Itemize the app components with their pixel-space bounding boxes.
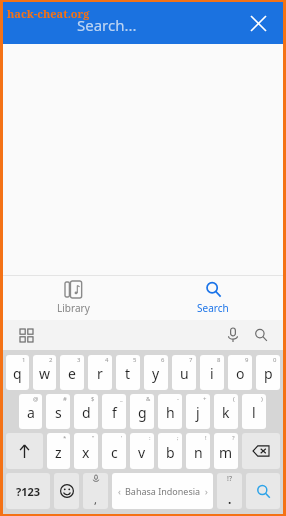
staticText: t: [125, 364, 131, 383]
button[interactable]: Library: [3, 276, 143, 320]
button[interactable]: ): [242, 394, 266, 429]
staticText: v: [138, 443, 146, 462]
staticText: 5: [133, 356, 137, 364]
staticText: b: [166, 443, 175, 462]
button[interactable]: -: [158, 394, 182, 429]
button[interactable]: (: [214, 394, 238, 429]
staticText: Library: [57, 301, 90, 315]
staticText: ‹: [118, 485, 121, 497]
staticText: ;: [177, 434, 179, 442]
staticText: ": [92, 434, 95, 442]
staticText: 8: [217, 356, 221, 364]
staticText: :: [149, 434, 151, 442]
button[interactable]: Comma: [83, 473, 108, 509]
staticText: g: [138, 403, 147, 422]
staticText: ?: [232, 434, 235, 442]
staticText: o: [236, 364, 245, 383]
staticText: #: [63, 395, 67, 403]
staticText: 2: [49, 356, 53, 364]
staticText: +: [203, 395, 207, 403]
staticText: &: [146, 395, 151, 403]
staticText: 9: [245, 356, 249, 364]
button[interactable]: _: [102, 394, 126, 429]
staticText: x: [82, 443, 90, 462]
button[interactable]: $: [74, 394, 98, 429]
button[interactable]: 2: [33, 355, 56, 390]
button[interactable]: 9: [228, 355, 252, 390]
staticText: Bahasa Indonesia: [125, 485, 201, 497]
button[interactable]: +: [186, 394, 210, 429]
button[interactable]: Period: [217, 473, 242, 509]
button[interactable]: Clipboard: [13, 322, 39, 348]
button[interactable]: ": [74, 433, 98, 469]
staticText: 1: [22, 356, 26, 364]
button[interactable]: 3: [60, 355, 84, 390]
button[interactable]: 0: [256, 355, 280, 390]
staticText: n: [194, 443, 203, 462]
staticText: k: [222, 403, 230, 422]
button[interactable]: Search: [143, 276, 283, 320]
staticText: h: [166, 403, 175, 422]
button[interactable]: !: [186, 433, 210, 469]
button[interactable]: ?123: [6, 473, 50, 509]
button[interactable]: Close: [241, 6, 275, 40]
staticText: 3: [77, 356, 81, 364]
staticText: f: [112, 403, 117, 422]
button[interactable]: ': [102, 433, 126, 469]
staticText: hack-cheat.org: [7, 6, 90, 21]
button[interactable]: 7: [172, 355, 196, 390]
staticText: ›: [205, 485, 208, 497]
staticText: y: [152, 364, 160, 383]
staticText: e: [68, 364, 76, 383]
staticText: q: [13, 364, 22, 383]
button[interactable]: 6: [144, 355, 168, 390]
staticText: z: [55, 443, 62, 462]
staticText: l: [252, 403, 256, 422]
staticText: _: [120, 395, 123, 403]
button[interactable]: @: [19, 394, 42, 429]
staticText: i: [210, 364, 214, 383]
staticText: 6: [161, 356, 165, 364]
staticText: s: [55, 403, 62, 422]
button[interactable]: ?: [214, 433, 238, 469]
staticText: a: [27, 403, 35, 422]
staticText: m: [219, 443, 233, 462]
staticText: (: [233, 395, 235, 403]
staticText: -: [177, 395, 179, 403]
staticText: d: [82, 403, 91, 422]
button[interactable]: *: [47, 433, 70, 469]
button[interactable]: 8: [200, 355, 224, 390]
button[interactable]: :: [130, 433, 154, 469]
staticText: ): [261, 395, 263, 403]
button[interactable]: Search: [246, 473, 280, 509]
button[interactable]: Search keyboard: [247, 321, 275, 349]
button[interactable]: Shift: [6, 433, 43, 469]
button[interactable]: 5: [116, 355, 140, 390]
button[interactable]: &: [130, 394, 154, 429]
staticText: c: [111, 443, 118, 462]
button[interactable]: Emoji: [54, 473, 79, 509]
staticText: Search...: [77, 15, 137, 35]
staticText: Search: [197, 301, 229, 315]
staticText: j: [196, 403, 200, 422]
button[interactable]: #: [46, 394, 70, 429]
staticText: w: [39, 364, 51, 383]
staticText: 4: [105, 356, 109, 364]
button[interactable]: Voice input: [219, 321, 247, 349]
staticText: u: [180, 364, 189, 383]
staticText: r: [97, 364, 103, 383]
button[interactable]: Space: [112, 473, 213, 509]
staticText: .: [228, 491, 232, 507]
button[interactable]: ;: [158, 433, 182, 469]
staticText: !: [205, 434, 207, 442]
staticText: ': [121, 434, 123, 442]
button[interactable]: Backspace: [242, 433, 280, 469]
button[interactable]: 1: [6, 355, 29, 390]
staticText: @: [33, 395, 39, 403]
staticText: $: [91, 395, 95, 403]
button[interactable]: 4: [88, 355, 112, 390]
staticText: *: [63, 434, 67, 442]
staticText: !?: [227, 474, 232, 484]
staticText: ,: [94, 492, 97, 507]
staticText: p: [264, 364, 273, 383]
